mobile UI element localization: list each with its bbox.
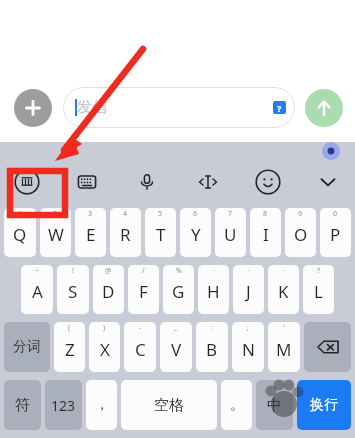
staticText: 1: [18, 209, 23, 219]
button[interactable]: Move cursor: [191, 165, 225, 199]
button[interactable]: Keyboard layout: [70, 165, 104, 199]
button[interactable]: Hide keyboard: [311, 165, 345, 199]
staticText: 换行: [310, 396, 338, 414]
staticText: 4: [123, 209, 128, 219]
button[interactable]: 6: [180, 208, 211, 257]
button[interactable]: ': [268, 322, 300, 372]
button[interactable]: -: [124, 322, 156, 372]
staticText: ': [283, 323, 285, 333]
staticText: ，: [95, 396, 109, 414]
staticText: A: [32, 280, 43, 303]
button[interactable]: 123: [45, 380, 82, 430]
staticText: O: [294, 223, 308, 246]
button[interactable]: ·: [198, 265, 229, 314]
staticText: /: [142, 266, 145, 276]
staticText: 。: [230, 396, 244, 414]
staticText: %: [176, 266, 182, 276]
staticText: Y: [191, 223, 201, 246]
button[interactable]: ;: [232, 322, 264, 372]
staticText: B: [206, 338, 218, 361]
button[interactable]: 符: [4, 380, 41, 430]
button[interactable]: Voice input: [130, 165, 164, 199]
staticText: ): [103, 323, 106, 333]
staticText: :: [211, 323, 213, 333]
staticText: 2: [53, 209, 58, 219]
staticText: 0: [333, 209, 338, 219]
staticText: M: [276, 338, 292, 361]
staticText: R: [120, 223, 131, 246]
button[interactable]: Add: [14, 89, 52, 127]
button[interactable]: 1: [4, 208, 36, 257]
staticText: 符: [15, 396, 30, 415]
staticText: L: [314, 280, 323, 303]
button[interactable]: 8: [250, 208, 281, 257]
button[interactable]: :: [196, 322, 228, 372]
staticText: I: [263, 223, 269, 246]
staticText: U: [224, 223, 237, 246]
staticText: D: [102, 280, 115, 303]
staticText: ?: [317, 266, 321, 276]
button[interactable]: (: [54, 322, 85, 372]
staticText: N: [242, 338, 255, 361]
button[interactable]: 0: [320, 208, 351, 257]
button[interactable]: Input method: [10, 165, 44, 199]
button[interactable]: 换行: [297, 380, 351, 430]
button[interactable]: ·: [268, 265, 299, 314]
staticText: K: [278, 280, 289, 303]
staticText: ·: [283, 266, 285, 276]
staticText: ~: [35, 266, 40, 276]
button[interactable]: Send: [305, 89, 343, 127]
staticText: X: [100, 338, 110, 361]
staticText: 123: [51, 396, 76, 415]
staticText: ;: [247, 323, 249, 333]
button[interactable]: 空格: [121, 380, 217, 430]
staticText: ·: [213, 266, 215, 276]
staticText: P: [330, 223, 341, 246]
staticText: 空格: [154, 396, 184, 415]
button[interactable]: 2: [40, 208, 71, 257]
staticText: Z: [65, 338, 75, 361]
button[interactable]: Backspace: [304, 322, 351, 372]
staticText: Q: [13, 223, 27, 246]
staticText: G: [172, 280, 185, 303]
button[interactable]: ?: [303, 265, 334, 314]
staticText: ·: [248, 266, 250, 276]
button[interactable]: 9: [285, 208, 316, 257]
button[interactable]: 中: [256, 380, 293, 430]
staticText: 发信: [77, 98, 107, 117]
staticText: E: [86, 223, 96, 246]
button[interactable]: Emoji: [251, 165, 285, 199]
staticText: _: [174, 323, 178, 333]
staticText: 分词: [13, 338, 41, 356]
staticText: F: [139, 280, 148, 303]
staticText: V: [171, 338, 182, 361]
staticText: W: [48, 223, 64, 246]
staticText: !: [72, 266, 74, 276]
button[interactable]: 5: [145, 208, 176, 257]
button[interactable]: 。: [221, 380, 252, 430]
button[interactable]: /: [128, 265, 159, 314]
button[interactable]: !: [57, 265, 89, 314]
button[interactable]: _: [160, 322, 192, 372]
button[interactable]: ，: [86, 380, 117, 430]
staticText: 3: [88, 209, 93, 219]
staticText: 6: [193, 209, 198, 219]
button[interactable]: 分词: [4, 322, 50, 372]
button[interactable]: 7: [215, 208, 246, 257]
staticText: 7: [228, 209, 233, 219]
button[interactable]: ): [89, 322, 120, 372]
button[interactable]: 4: [110, 208, 141, 257]
staticText: -: [139, 323, 142, 333]
button[interactable]: ·: [233, 265, 264, 314]
staticText: 8: [263, 209, 268, 219]
staticText: ?: [277, 102, 282, 114]
button[interactable]: 发信: [63, 87, 295, 128]
button[interactable]: @: [93, 265, 124, 314]
button[interactable]: %: [163, 265, 194, 314]
button[interactable]: 3: [75, 208, 106, 257]
staticText: 中: [267, 396, 282, 415]
staticText: 9: [298, 209, 303, 219]
staticText: H: [207, 280, 220, 303]
staticText: J: [246, 280, 251, 303]
button[interactable]: ~: [21, 265, 53, 314]
